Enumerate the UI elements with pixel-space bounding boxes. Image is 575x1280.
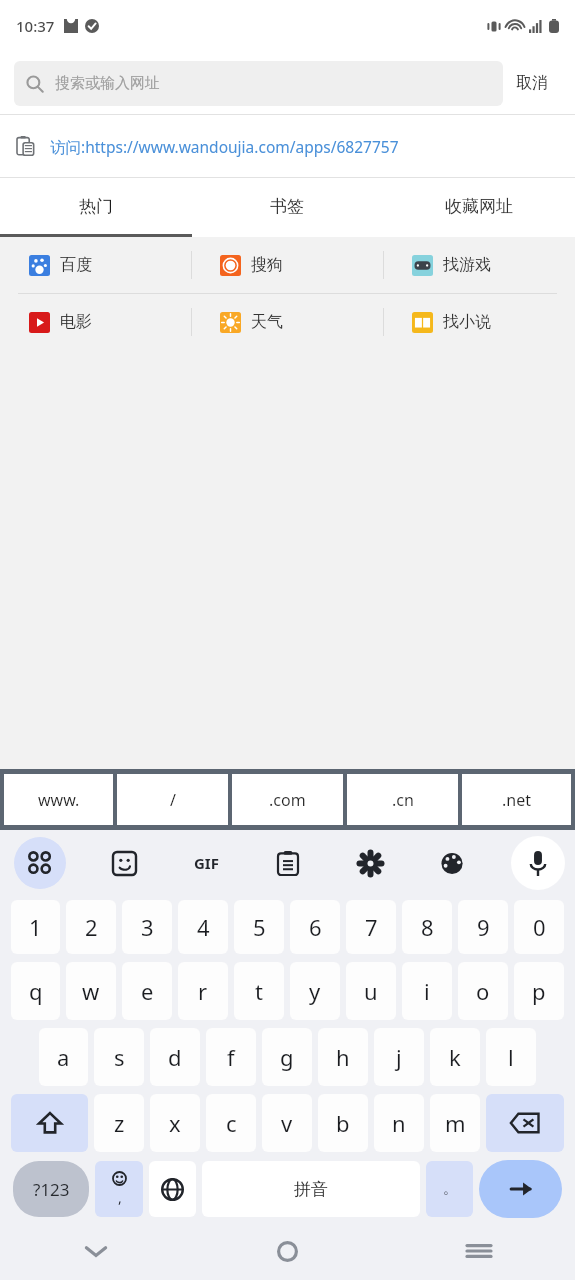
button[interactable]: .com <box>232 774 343 825</box>
staticText: x <box>169 1108 181 1138</box>
button[interactable]: r <box>178 962 228 1020</box>
staticText: .cn <box>392 789 414 811</box>
button[interactable]: j <box>374 1028 424 1086</box>
button[interactable]: k <box>430 1028 480 1086</box>
button[interactable]: v <box>262 1094 312 1152</box>
button[interactable]: 8 <box>402 900 452 954</box>
button[interactable]: 取消 <box>503 65 561 101</box>
button[interactable]: b <box>318 1094 368 1152</box>
button[interactable]: .cn <box>347 774 458 825</box>
button[interactable]: Voice input <box>511 836 565 890</box>
staticText: 搜索或输入网址 <box>55 74 160 93</box>
button[interactable]: l <box>486 1028 536 1086</box>
button[interactable]: u <box>346 962 396 1020</box>
button[interactable]: Shift <box>11 1094 88 1152</box>
button[interactable]: 搜狗 <box>191 237 383 293</box>
staticText: 访问:https://www.wandoujia.com/apps/682775… <box>50 136 399 157</box>
button[interactable]: 1 <box>11 900 60 954</box>
button[interactable]: 天气 <box>191 294 383 350</box>
staticText: s <box>114 1042 125 1072</box>
button[interactable]: z <box>94 1094 144 1152</box>
button[interactable]: Settings <box>347 840 393 886</box>
button[interactable]: 2 <box>66 900 116 954</box>
button[interactable]: .net <box>462 774 571 825</box>
button[interactable]: 访问:https://www.wandoujia.com/apps/682775… <box>0 115 575 177</box>
staticText: 书签 <box>270 196 304 217</box>
staticText: e <box>141 976 154 1006</box>
staticText: k <box>449 1042 461 1072</box>
button[interactable]: 找游戏 <box>383 237 575 293</box>
staticText: b <box>336 1108 350 1138</box>
staticText: 百度 <box>60 255 92 275</box>
button[interactable]: 搜索或输入网址 <box>14 61 503 106</box>
staticText: t <box>255 976 263 1006</box>
button[interactable]: 9 <box>458 900 508 954</box>
button[interactable]: Backspace <box>486 1094 564 1152</box>
button[interactable]: Home <box>191 1222 383 1280</box>
staticText: n <box>392 1108 406 1138</box>
staticText: m <box>445 1108 466 1138</box>
button[interactable]: Enter <box>479 1160 562 1218</box>
button[interactable]: 3 <box>122 900 172 954</box>
button[interactable]: d <box>150 1028 200 1086</box>
staticText: 2 <box>85 912 98 942</box>
button[interactable]: x <box>150 1094 200 1152</box>
button[interactable]: p <box>514 962 564 1020</box>
button[interactable]: Hide keyboard <box>0 1222 191 1280</box>
button[interactable]: Apps <box>14 837 66 889</box>
button[interactable]: Theme <box>429 840 475 886</box>
button[interactable]: g <box>262 1028 312 1086</box>
button[interactable]: w <box>66 962 116 1020</box>
button[interactable]: q <box>11 962 60 1020</box>
button[interactable]: 热门 <box>0 178 191 234</box>
button[interactable]: GIF <box>183 840 229 886</box>
button[interactable]: 书签 <box>191 178 383 234</box>
staticText: d <box>168 1042 182 1072</box>
staticText: , <box>118 1188 122 1207</box>
button[interactable]: Emoji and comma <box>95 1161 143 1217</box>
button[interactable]: c <box>206 1094 256 1152</box>
button[interactable]: 找小说 <box>383 294 575 350</box>
staticText: 热门 <box>79 196 113 217</box>
button[interactable]: m <box>430 1094 480 1152</box>
staticText: 1 <box>29 912 42 942</box>
button[interactable]: i <box>402 962 452 1020</box>
button[interactable]: 6 <box>290 900 340 954</box>
staticText: 8 <box>421 912 434 942</box>
staticText: u <box>364 976 378 1006</box>
button[interactable]: Recent apps <box>383 1222 575 1280</box>
button[interactable]: 电影 <box>0 294 191 350</box>
button[interactable]: 百度 <box>0 237 191 293</box>
button[interactable]: h <box>318 1028 368 1086</box>
staticText: / <box>170 789 176 811</box>
button[interactable]: Stickers <box>101 840 147 886</box>
staticText: 9 <box>477 912 490 942</box>
button[interactable]: a <box>39 1028 88 1086</box>
button[interactable]: 。 <box>426 1161 473 1217</box>
button[interactable]: www. <box>4 774 113 825</box>
button[interactable]: e <box>122 962 172 1020</box>
button[interactable]: f <box>206 1028 256 1086</box>
staticText: o <box>476 976 490 1006</box>
button[interactable]: s <box>94 1028 144 1086</box>
staticText: 6 <box>309 912 322 942</box>
button[interactable]: Change language <box>149 1161 196 1217</box>
button[interactable]: y <box>290 962 340 1020</box>
button[interactable]: o <box>458 962 508 1020</box>
button[interactable]: 拼音 <box>202 1161 420 1217</box>
staticText: 天气 <box>251 312 283 332</box>
button[interactable]: ?123 <box>13 1161 89 1217</box>
button[interactable]: Clipboard <box>265 840 311 886</box>
button[interactable]: 收藏网址 <box>383 178 575 234</box>
button[interactable]: n <box>374 1094 424 1152</box>
button[interactable]: 7 <box>346 900 396 954</box>
staticText: l <box>508 1042 514 1072</box>
button[interactable]: 0 <box>514 900 564 954</box>
staticText: g <box>280 1042 294 1072</box>
button[interactable]: 4 <box>178 900 228 954</box>
button[interactable]: t <box>234 962 284 1020</box>
staticText: 5 <box>253 912 266 942</box>
button[interactable]: / <box>117 774 228 825</box>
staticText: p <box>532 976 546 1006</box>
button[interactable]: 5 <box>234 900 284 954</box>
